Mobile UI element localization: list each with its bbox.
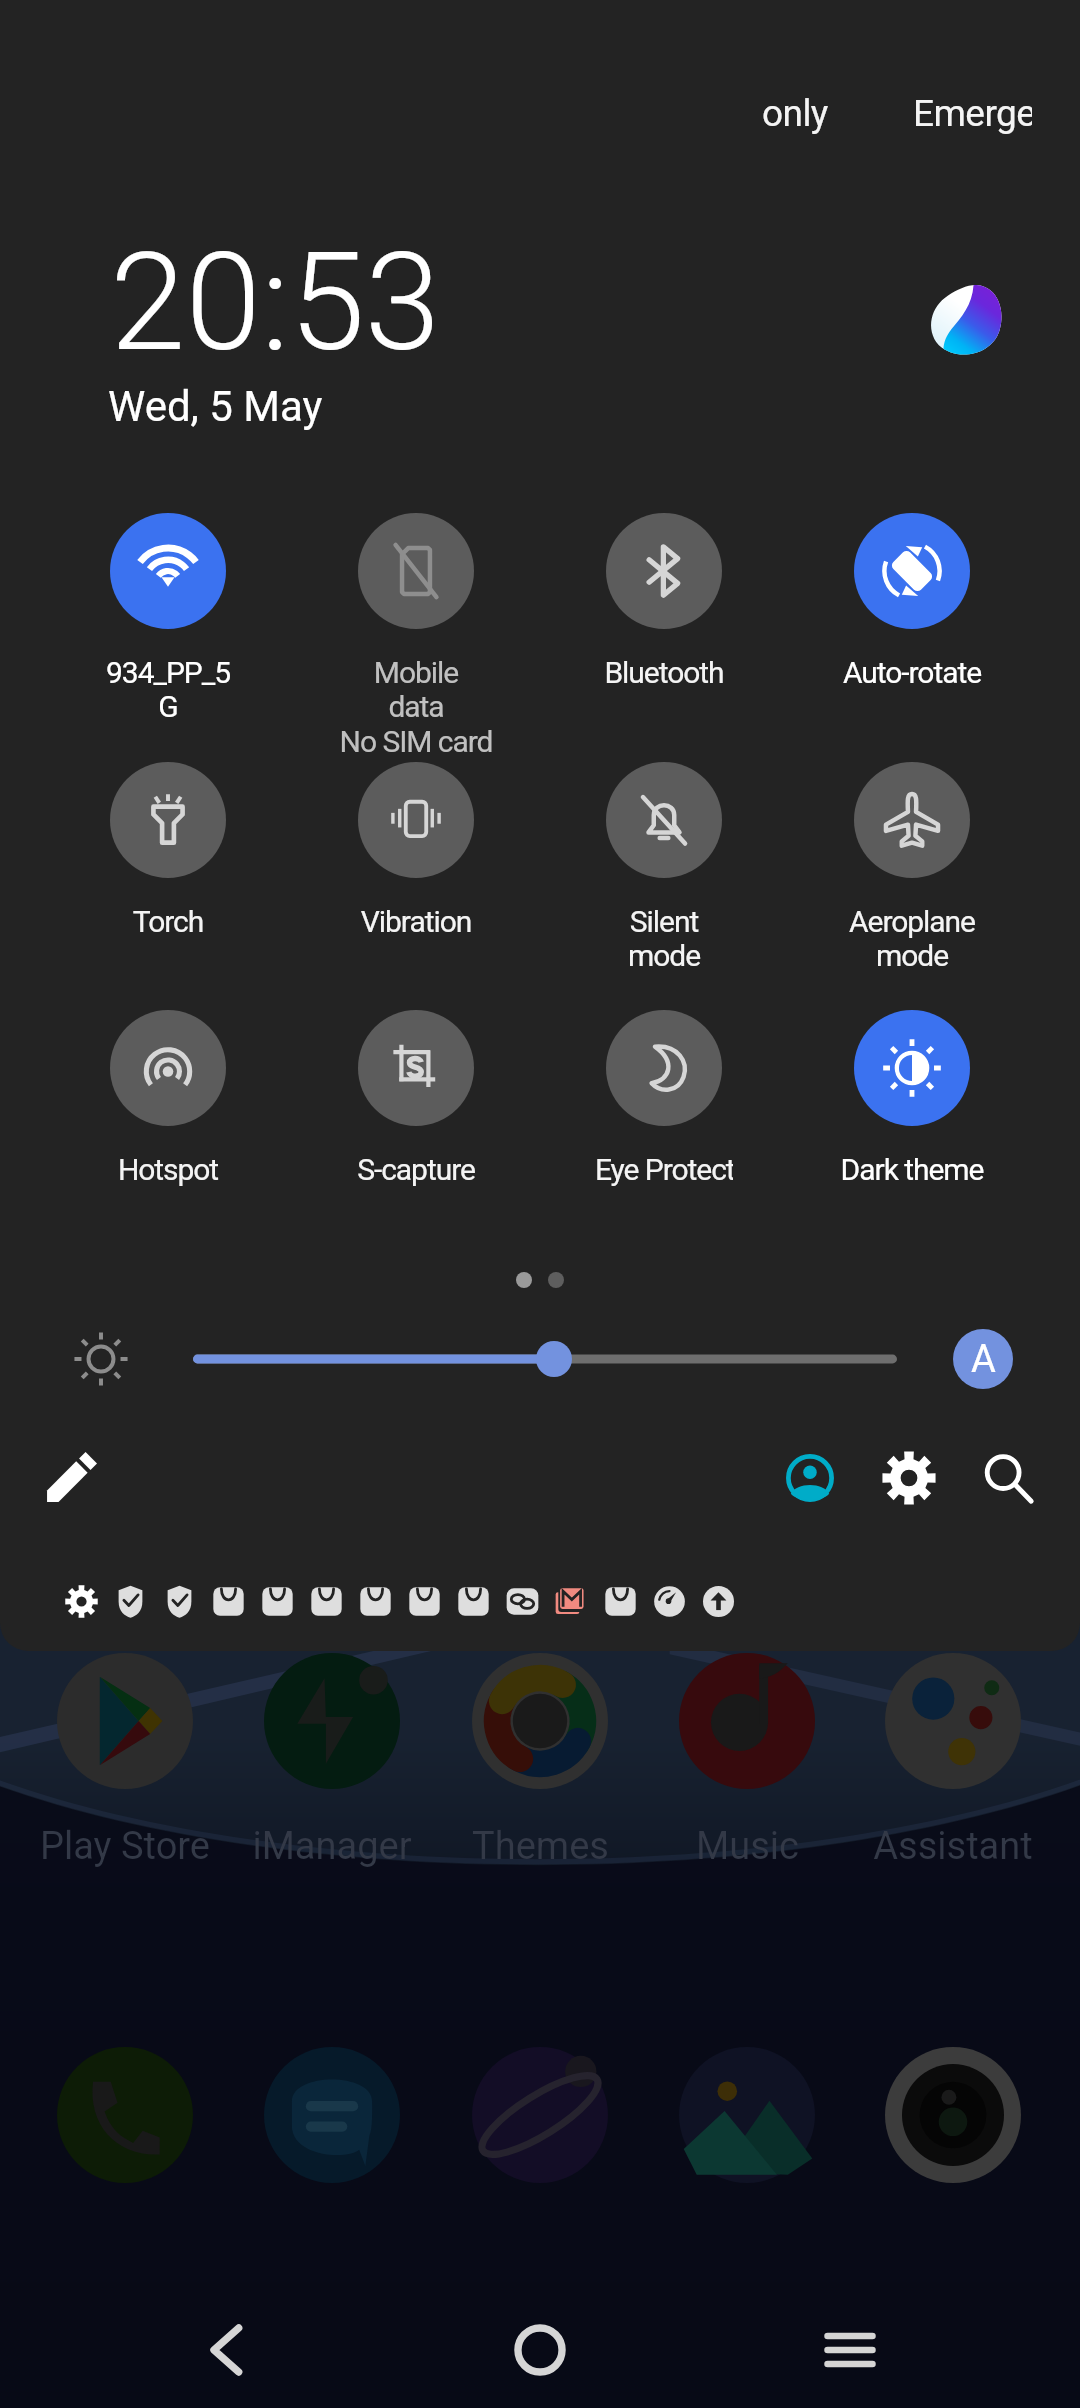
button[interactable]: Mobile data [292,513,540,759]
button[interactable]: Gallery [679,2047,815,2183]
button[interactable]: S-capture [292,1010,540,1187]
button[interactable]: Brightness [193,1339,897,1379]
staticText: 934_PP_5 G [44,655,292,724]
staticText: Dark theme [788,1152,1036,1187]
staticText: Eye Protect [595,1152,733,1187]
staticText: Assistant [873,1824,1033,1869]
staticText: Aeroplane mode [788,904,1036,973]
button[interactable]: Torch [44,762,292,939]
button[interactable]: Bluetooth [540,513,788,690]
button[interactable]: Assistant [885,1653,1021,1789]
staticText: Vibration [292,904,540,939]
staticText: Play Store [40,1824,210,1869]
button[interactable]: Account [783,1451,837,1505]
button[interactable]: Aeroplane mode [788,762,1036,973]
staticText: A [971,1337,996,1382]
button[interactable]: Home [495,2305,585,2395]
staticText: Emergency calls only [913,92,1032,135]
button[interactable]: Auto brightness [953,1329,1013,1389]
button[interactable]: Silent mode [540,762,788,973]
staticText: 20:53 [110,223,441,382]
button[interactable]: Camera [885,2047,1021,2183]
button[interactable]: Back [182,2305,272,2395]
staticText: No SIM card [292,724,540,759]
button[interactable]: Music [679,1653,815,1789]
button[interactable]: Recent apps [805,2305,895,2395]
button[interactable]: Search [981,1451,1035,1505]
button[interactable]: Themes [472,1653,608,1789]
button[interactable]: iManager [264,1653,400,1789]
staticText: Wed, 5 May [108,382,323,431]
button[interactable]: Dark theme [788,1010,1036,1187]
button[interactable]: 934_PP_5 G [44,513,292,724]
button[interactable]: Browser [472,2047,608,2183]
button[interactable]: Auto-rotate [788,513,1036,690]
staticText: Auto-rotate [788,655,1036,690]
staticText: Hotspot [44,1152,292,1187]
staticText: Themes [472,1824,609,1869]
staticText: Torch [44,904,292,939]
staticText: only [762,92,828,135]
button[interactable]: Vibration [292,762,540,939]
staticText: Mobile data [292,655,540,724]
staticText: Bluetooth [540,655,788,690]
staticText: S-capture [292,1152,540,1187]
button[interactable]: Edit tiles [45,1452,97,1504]
staticText: iManager [252,1824,412,1869]
button[interactable]: Hotspot [44,1010,292,1187]
button[interactable]: Eye Protect [540,1010,788,1187]
staticText: Music [696,1824,799,1869]
button[interactable]: Phone [57,2047,193,2183]
button[interactable]: Settings [882,1451,936,1505]
button[interactable]: Messages [264,2047,400,2183]
button[interactable]: Play Store [57,1653,193,1789]
staticText: Silent mode [540,904,788,973]
